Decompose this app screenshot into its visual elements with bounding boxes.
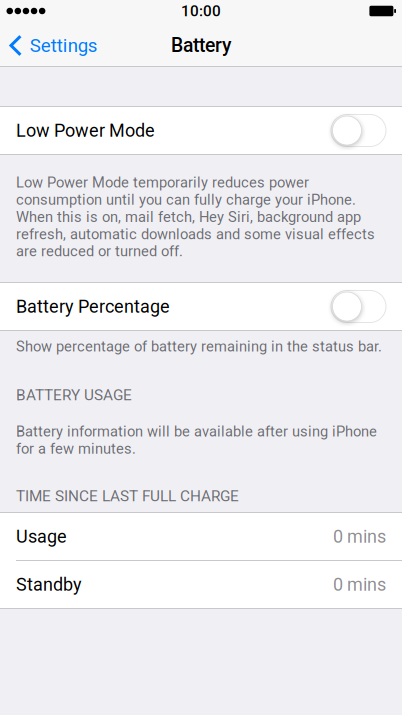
staticText: 10:00 xyxy=(181,2,221,20)
button[interactable]: Standby xyxy=(0,561,402,608)
staticText: Low Power Mode xyxy=(16,120,155,141)
staticText: BATTERY USAGE xyxy=(16,386,132,404)
staticText: Show percentage of battery remaining in … xyxy=(16,338,382,355)
button[interactable]: Settings xyxy=(0,24,108,66)
staticText: Usage xyxy=(16,526,67,547)
staticText: 0 mins xyxy=(333,574,386,595)
staticText: Standby xyxy=(16,574,82,595)
staticText: 0 mins xyxy=(333,526,386,547)
button[interactable]: Battery Percentage xyxy=(0,283,402,330)
staticText: Battery Percentage xyxy=(16,296,170,317)
staticText: Low Power Mode temporarily reduces power… xyxy=(16,174,375,260)
staticText: Battery information will be available af… xyxy=(16,423,377,457)
staticText: TIME SINCE LAST FULL CHARGE xyxy=(16,487,239,505)
staticText: Settings xyxy=(30,35,98,56)
staticText: Battery xyxy=(171,34,231,57)
button[interactable]: Low Power Mode xyxy=(0,107,402,154)
button[interactable]: Usage xyxy=(0,513,402,560)
